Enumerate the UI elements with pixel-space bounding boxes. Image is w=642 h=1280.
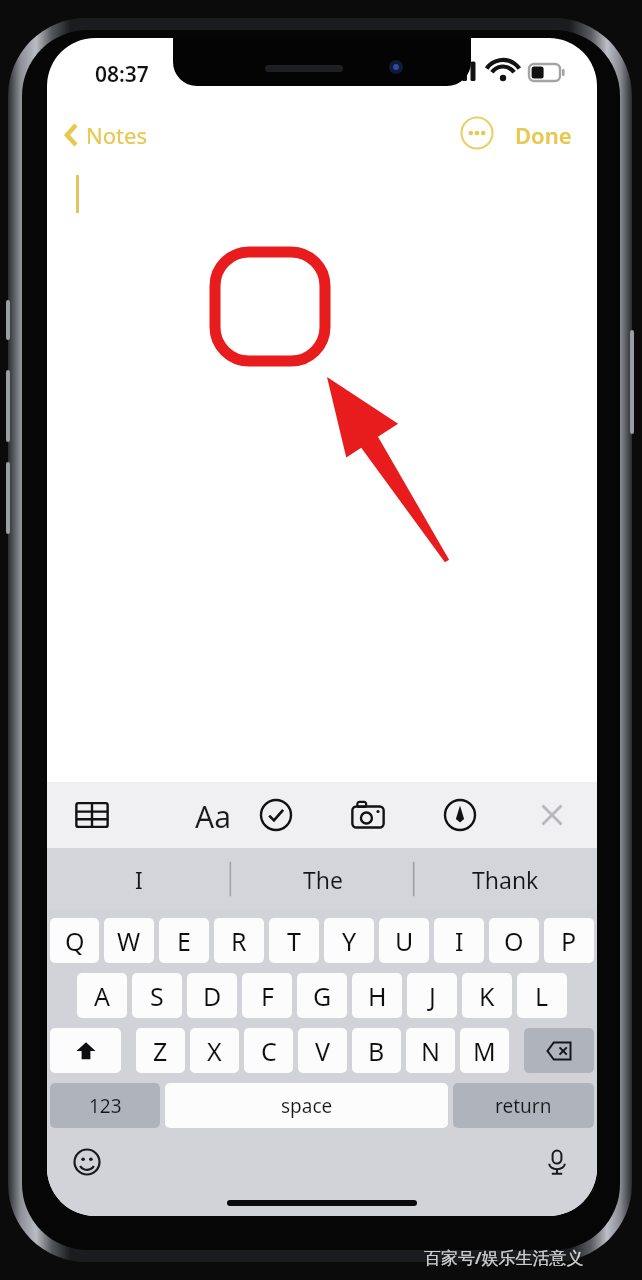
staticText: P <box>561 924 577 958</box>
button[interactable]: C <box>244 1028 293 1073</box>
staticText: D <box>203 979 222 1013</box>
button[interactable]: X <box>190 1028 239 1073</box>
staticText: U <box>395 924 414 958</box>
button[interactable]: Text format <box>161 792 207 838</box>
staticText: The <box>303 864 343 895</box>
button[interactable]: Insert table <box>69 792 115 838</box>
button[interactable]: Backspace <box>524 1028 594 1073</box>
staticText: R <box>231 924 247 958</box>
button[interactable]: W <box>104 918 154 963</box>
staticText: I <box>135 864 143 895</box>
staticText: 百家号/娱乐生活意义 <box>424 1246 584 1269</box>
button[interactable]: Notes <box>61 114 151 156</box>
button[interactable]: E <box>159 918 209 963</box>
staticText: L <box>535 979 549 1013</box>
staticText: Z <box>153 1034 168 1068</box>
button[interactable]: Q <box>50 918 99 963</box>
button[interactable]: The <box>231 848 414 910</box>
button[interactable]: More options <box>460 116 494 150</box>
button[interactable]: B <box>352 1028 401 1073</box>
button[interactable]: P <box>544 918 594 963</box>
button[interactable]: Z <box>136 1028 185 1073</box>
button[interactable]: T <box>269 918 319 963</box>
button[interactable]: Done <box>509 114 578 156</box>
button[interactable]: H <box>352 973 402 1018</box>
staticText: Done <box>515 120 572 150</box>
button[interactable]: Thank <box>414 848 597 910</box>
button[interactable]: 123 <box>50 1083 160 1128</box>
staticText: A <box>94 979 110 1013</box>
button[interactable]: I <box>434 918 484 963</box>
button[interactable]: return <box>453 1083 594 1128</box>
button[interactable]: S <box>132 973 182 1018</box>
staticText: C <box>261 1034 277 1068</box>
staticText: 123 <box>89 1093 122 1119</box>
button[interactable]: N <box>406 1028 455 1073</box>
staticText: I <box>455 924 464 958</box>
button[interactable]: F <box>242 973 292 1018</box>
button[interactable]: L <box>517 973 567 1018</box>
button[interactable]: Y <box>324 918 374 963</box>
button[interactable]: U <box>379 918 429 963</box>
staticText: return <box>495 1093 552 1119</box>
staticText: O <box>504 924 524 958</box>
button[interactable]: I <box>47 848 231 910</box>
button[interactable]: G <box>297 973 347 1018</box>
staticText: N <box>421 1034 441 1068</box>
staticText: S <box>150 979 164 1013</box>
staticText: K <box>479 979 495 1013</box>
staticText: Q <box>65 924 85 958</box>
button[interactable]: Dictation <box>535 1140 579 1184</box>
staticText: E <box>177 924 191 958</box>
button[interactable]: space <box>165 1083 448 1128</box>
button[interactable]: Shift <box>50 1028 121 1073</box>
button[interactable]: D <box>187 973 237 1018</box>
staticText: 08:37 <box>95 60 149 89</box>
staticText: V <box>315 1034 331 1068</box>
staticText: Notes <box>86 120 147 150</box>
button[interactable]: A <box>77 973 127 1018</box>
staticText: B <box>368 1034 385 1068</box>
staticText: Thank <box>472 864 539 895</box>
button[interactable]: R <box>214 918 264 963</box>
button[interactable]: Checklist <box>253 792 299 838</box>
staticText: T <box>287 924 301 958</box>
staticText: W <box>117 924 141 958</box>
staticText: G <box>313 979 332 1013</box>
button[interactable]: O <box>489 918 539 963</box>
staticText: F <box>261 979 274 1013</box>
staticText: Aa <box>195 796 231 837</box>
button[interactable]: M <box>460 1028 509 1073</box>
staticText: X <box>207 1034 222 1068</box>
button[interactable]: K <box>462 973 512 1018</box>
staticText: H <box>368 979 387 1013</box>
button[interactable]: Close keyboard <box>529 792 575 838</box>
staticText: space <box>281 1093 333 1119</box>
staticText: J <box>429 979 436 1013</box>
button[interactable]: V <box>298 1028 347 1073</box>
button[interactable]: J <box>407 973 457 1018</box>
button[interactable]: Emoji <box>65 1140 109 1184</box>
staticText: Y <box>342 924 357 958</box>
button[interactable]: Camera <box>345 792 391 838</box>
button[interactable]: Markup <box>437 792 483 838</box>
staticText: M <box>473 1034 496 1068</box>
